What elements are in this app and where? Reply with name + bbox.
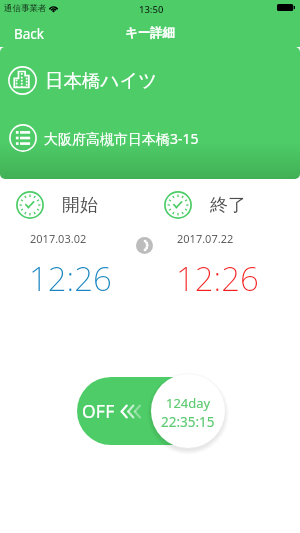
button[interactable]: 開始 xyxy=(16,191,98,219)
staticText: 22:35:15 xyxy=(161,413,215,431)
staticText: 124day xyxy=(166,394,211,412)
staticText: Back xyxy=(14,25,45,43)
button[interactable]: OFF xyxy=(77,377,207,445)
staticText: 日本橋ハイツ xyxy=(45,69,158,92)
staticText: 12:26 xyxy=(29,256,112,301)
staticText: 2017.03.02 xyxy=(30,231,87,246)
staticText: 終了 xyxy=(210,194,246,217)
staticText: キー詳細 xyxy=(125,25,176,41)
other: Building xyxy=(8,66,37,95)
button[interactable]: 終了 xyxy=(164,191,246,219)
staticText: 12:26 xyxy=(176,256,259,301)
button[interactable]: Back xyxy=(9,22,50,46)
staticText: 開始 xyxy=(62,194,98,217)
staticText: OFF xyxy=(82,399,115,423)
staticText: 13:50 xyxy=(139,3,164,16)
button[interactable]: Building xyxy=(0,54,300,106)
button[interactable]: 124day xyxy=(151,374,225,448)
other: Address xyxy=(9,124,37,152)
staticText: 2017.07.22 xyxy=(177,231,234,246)
button[interactable]: Address xyxy=(0,115,300,161)
staticText: 通信事業者 xyxy=(4,3,47,14)
staticText: 大阪府高槻市日本橋3-15 xyxy=(44,129,199,148)
